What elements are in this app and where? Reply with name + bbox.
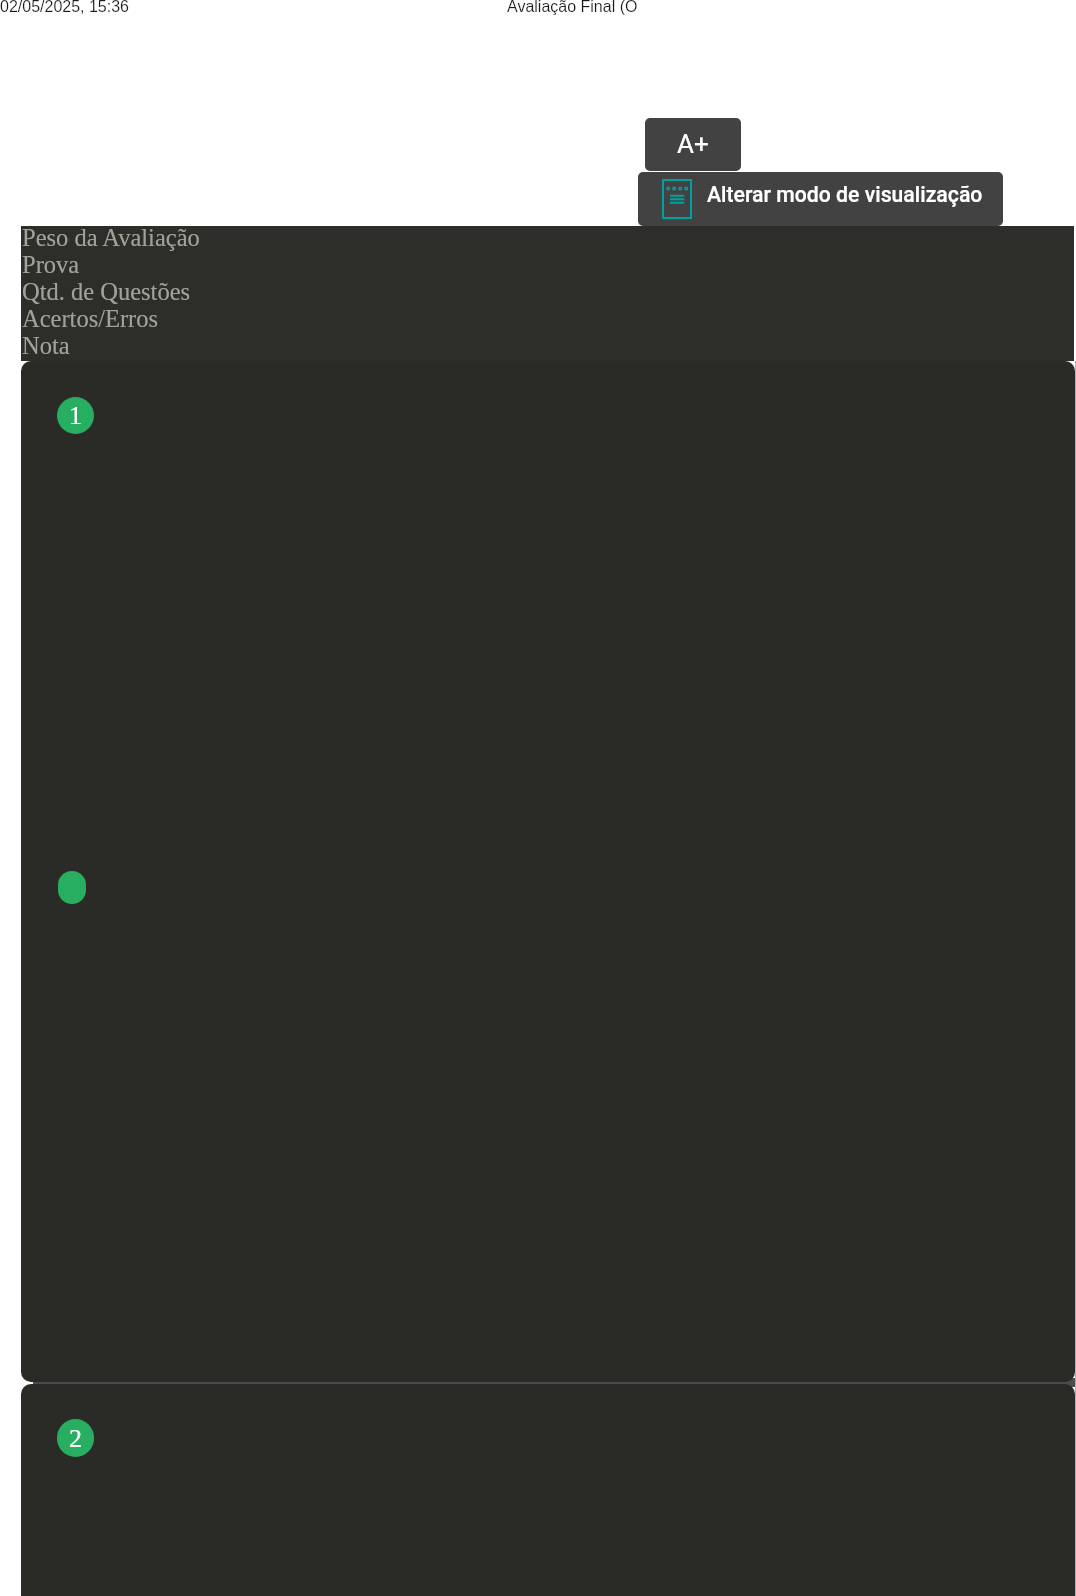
button[interactable]: Alterar modo de visualização	[638, 172, 1003, 226]
staticText: Avaliação Final (O	[507, 0, 638, 16]
staticText: Acertos/Erros	[22, 305, 159, 332]
staticText: Prova	[22, 251, 80, 278]
staticText: 02/05/2025, 15:36	[0, 0, 130, 16]
staticText: 2	[69, 1424, 82, 1453]
staticText: Peso da Avaliação	[22, 224, 200, 251]
staticText: Qtd. de Questões	[22, 278, 191, 305]
button[interactable]: 1	[21, 361, 1075, 1382]
staticText: Nota	[22, 332, 70, 359]
button[interactable]: 2	[21, 1384, 1075, 1596]
staticText: 1	[69, 401, 82, 430]
other: Alterar modo de visualização	[662, 179, 692, 219]
staticText: A+	[677, 129, 709, 159]
staticText: Alterar modo de visualização	[707, 182, 983, 207]
button[interactable]: A+	[645, 118, 741, 171]
